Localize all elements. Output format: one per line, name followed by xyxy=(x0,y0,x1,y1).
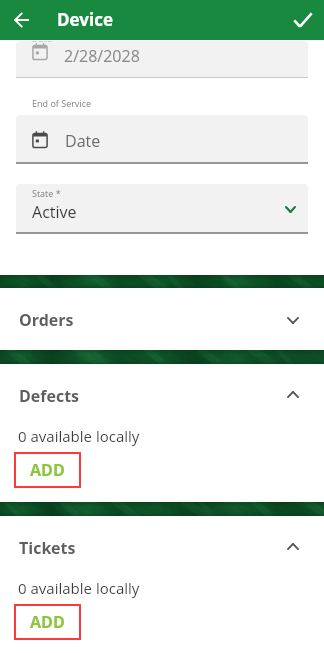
staticText: 0 available locally xyxy=(18,578,140,598)
staticText: Tickets xyxy=(19,537,76,559)
staticText: Date xyxy=(32,41,52,44)
staticText: State * xyxy=(32,187,61,199)
staticText: 0 available locally xyxy=(18,426,140,446)
button[interactable]: ADD xyxy=(14,452,81,488)
button[interactable]: Tickets xyxy=(0,516,324,578)
staticText: Date xyxy=(65,130,101,152)
button[interactable]: Orders xyxy=(0,288,324,350)
button[interactable]: ADD xyxy=(14,604,81,640)
button[interactable]: Date xyxy=(16,115,308,162)
staticText: 2/28/2028 xyxy=(64,45,140,67)
button[interactable]: Date xyxy=(16,41,308,77)
staticText: ADD xyxy=(30,611,65,633)
staticText: Defects xyxy=(19,385,80,407)
staticText: Device xyxy=(57,8,113,31)
staticText: End of Service xyxy=(32,97,91,109)
button[interactable]: Navigate up xyxy=(1,0,41,40)
staticText: ADD xyxy=(30,459,65,481)
staticText: Orders xyxy=(19,309,74,331)
button[interactable]: Save xyxy=(284,0,324,40)
button[interactable]: State * xyxy=(16,184,308,232)
staticText: Active xyxy=(32,201,77,223)
button[interactable]: Defects xyxy=(0,364,324,426)
